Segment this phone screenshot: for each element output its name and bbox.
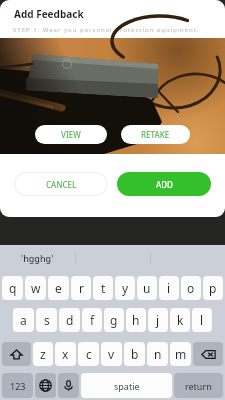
staticText: u [143, 280, 151, 296]
staticText: v [108, 346, 115, 362]
staticText: w [31, 280, 41, 296]
staticText: z [40, 346, 46, 362]
button[interactable]: d [59, 308, 80, 332]
staticText: k [177, 312, 184, 328]
staticText: p [209, 280, 217, 296]
button[interactable]: j [148, 308, 168, 332]
button[interactable]: r [71, 276, 91, 300]
button[interactable]: VIEW [35, 125, 107, 144]
staticText: h [132, 312, 140, 328]
staticText: l [200, 312, 204, 328]
staticText: ADD [156, 179, 173, 190]
button[interactable]: s [36, 308, 57, 332]
button[interactable]: CANCEL [14, 172, 108, 196]
staticText: a [20, 312, 27, 328]
staticText: 123 [10, 380, 26, 392]
staticText: m [175, 346, 187, 362]
staticText: q [9, 280, 17, 296]
staticText: Add Feedback [14, 7, 84, 21]
staticText: CANCEL [46, 179, 77, 190]
staticText: e [55, 280, 62, 296]
button[interactable]: n [147, 342, 168, 366]
staticText: j [156, 312, 160, 328]
staticText: b [131, 346, 139, 362]
button[interactable]: a [13, 308, 34, 332]
button[interactable]: y [115, 276, 135, 300]
staticText: r [79, 280, 84, 296]
staticText: RETAKE [141, 129, 170, 140]
button[interactable]: p [203, 276, 223, 300]
button[interactable]: i [159, 276, 179, 300]
button[interactable]: RETAKE [121, 125, 190, 144]
button[interactable]: v [101, 342, 122, 366]
staticText: d [66, 312, 74, 328]
button[interactable]: spatie [81, 373, 172, 398]
button[interactable]: return [174, 373, 223, 398]
staticText: i [167, 280, 171, 296]
button[interactable]: Backspace [193, 342, 223, 366]
button[interactable]: k [170, 308, 190, 332]
button[interactable]: ADD [117, 172, 211, 196]
staticText: VIEW [61, 129, 81, 140]
staticText: t [101, 280, 106, 296]
button[interactable]: Dictate [58, 373, 79, 398]
button[interactable]: l [192, 308, 212, 332]
button[interactable]: o [181, 276, 201, 300]
staticText: y [122, 280, 129, 296]
staticText: o [187, 280, 195, 296]
button[interactable]: x [55, 342, 76, 366]
staticText: s [44, 312, 50, 328]
button[interactable]: Shift [2, 342, 31, 366]
staticText: f [90, 312, 95, 328]
button[interactable]: h [126, 308, 146, 332]
staticText: spatie [114, 380, 140, 392]
staticText: STEP 1: Wear you personal protection equ… [13, 26, 200, 34]
button[interactable]: q [2, 276, 23, 300]
staticText: 'hgghg' [21, 252, 54, 264]
button[interactable]: m [170, 342, 191, 366]
button[interactable]: Change keyboard [35, 373, 56, 398]
button[interactable]: u [137, 276, 157, 300]
button[interactable]: 123 [2, 373, 33, 398]
button[interactable]: t [93, 276, 113, 300]
staticText: g [110, 312, 118, 328]
button[interactable]: w [25, 276, 46, 300]
button[interactable]: b [124, 342, 145, 366]
staticText: x [62, 346, 69, 362]
staticText: c [86, 346, 92, 362]
button[interactable]: e [48, 276, 69, 300]
button[interactable]: c [78, 342, 99, 366]
button[interactable]: z [33, 342, 53, 366]
button[interactable]: f [82, 308, 102, 332]
staticText: n [154, 346, 162, 362]
button[interactable]: g [104, 308, 124, 332]
staticText: return [185, 380, 212, 392]
